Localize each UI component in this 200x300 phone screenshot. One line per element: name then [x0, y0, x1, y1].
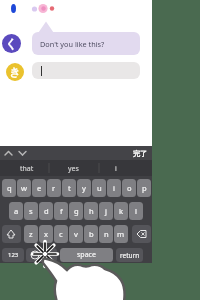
button[interactable]: x — [39, 225, 53, 243]
staticText: h — [89, 206, 94, 216]
staticText: x — [44, 229, 49, 239]
button[interactable]: n — [99, 225, 113, 243]
staticText: m — [117, 229, 125, 239]
button[interactable]: 123 — [2, 248, 24, 262]
button[interactable]: a — [9, 202, 23, 220]
staticText: s — [29, 206, 33, 216]
staticText: き — [9, 65, 21, 79]
button[interactable] — [2, 225, 21, 243]
staticText: g — [74, 206, 79, 216]
staticText: a — [14, 206, 19, 216]
button[interactable] — [26, 248, 44, 262]
button[interactable]: s — [24, 202, 38, 220]
button[interactable]: c — [54, 225, 68, 243]
staticText: w — [21, 183, 27, 193]
button[interactable]: b — [84, 225, 98, 243]
staticText: く — [5, 36, 18, 51]
staticText: k — [119, 206, 124, 216]
button[interactable]: z — [24, 225, 38, 243]
staticText: l — [135, 206, 137, 216]
staticText: v — [74, 229, 78, 239]
staticText: y — [82, 183, 86, 193]
staticText: Don't you like this? — [40, 39, 105, 49]
staticText: q — [7, 183, 12, 193]
button[interactable]: Don't you like this? — [32, 32, 140, 55]
button[interactable]: k — [114, 202, 128, 220]
button[interactable]: y — [77, 179, 91, 197]
staticText: p — [142, 183, 147, 193]
button[interactable]: w — [17, 179, 31, 197]
button[interactable]: space — [60, 248, 113, 262]
staticText: c — [59, 229, 63, 239]
button[interactable] — [32, 62, 140, 79]
staticText: e — [37, 183, 42, 193]
staticText: d — [44, 206, 49, 216]
button[interactable]: d — [39, 202, 53, 220]
staticText: j — [105, 206, 107, 216]
button[interactable]: く — [2, 34, 21, 53]
button[interactable]: v — [69, 225, 83, 243]
staticText: f — [60, 206, 63, 216]
staticText: b — [89, 229, 94, 239]
staticText: i — [113, 183, 115, 193]
button[interactable]: u — [92, 179, 106, 197]
button[interactable]: j — [99, 202, 113, 220]
button[interactable]: return — [116, 248, 143, 262]
button[interactable]: f — [54, 202, 68, 220]
button[interactable]: i — [107, 179, 121, 197]
button[interactable]: l — [129, 202, 143, 220]
staticText: o — [127, 183, 132, 193]
button[interactable] — [47, 248, 57, 262]
staticText: r — [52, 183, 56, 193]
button[interactable]: g — [69, 202, 83, 220]
button[interactable] — [132, 225, 151, 243]
staticText: space — [77, 250, 96, 260]
staticText: t — [68, 183, 71, 193]
staticText: u — [97, 183, 102, 193]
button[interactable]: m — [114, 225, 128, 243]
staticText: n — [104, 229, 109, 239]
button[interactable]: t — [62, 179, 76, 197]
button[interactable]: e — [32, 179, 46, 197]
button[interactable]: h — [84, 202, 98, 220]
staticText: return — [120, 251, 140, 260]
button[interactable]: yes — [68, 164, 79, 174]
button[interactable]: p — [137, 179, 151, 197]
button[interactable]: q — [2, 179, 16, 197]
staticText: z — [29, 229, 33, 239]
button[interactable]: o — [122, 179, 136, 197]
button[interactable]: that — [20, 164, 34, 174]
staticText: 完了 — [133, 149, 147, 158]
staticText: 123 — [8, 251, 19, 259]
button[interactable]: i — [115, 164, 117, 174]
button[interactable]: き — [6, 63, 24, 81]
button[interactable]: r — [47, 179, 61, 197]
